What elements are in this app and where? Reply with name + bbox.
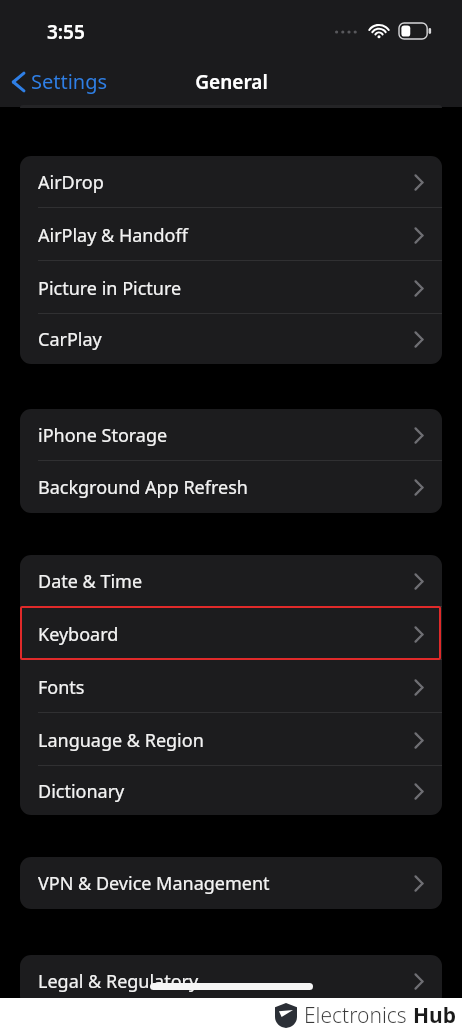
button[interactable]: Background App Refresh [20, 462, 442, 513]
button[interactable]: CarPlay [20, 315, 442, 364]
button[interactable]: Language & Region [20, 714, 442, 766]
staticText: Electronics [304, 1001, 407, 1030]
staticText: Background App Refresh [38, 475, 248, 500]
button[interactable]: iPhone Storage [20, 409, 442, 461]
staticText: Picture in Picture [38, 276, 182, 301]
button[interactable]: Dictionary [20, 767, 442, 815]
staticText: Fonts [38, 675, 85, 700]
button[interactable]: AirPlay & Handoff [20, 209, 442, 261]
staticText: General [195, 69, 268, 95]
button[interactable]: Picture in Picture [20, 262, 442, 314]
staticText: Hub [413, 1001, 456, 1030]
button[interactable]: AirDrop [20, 156, 442, 208]
staticText: CarPlay [38, 327, 102, 352]
staticText: Keyboard [38, 622, 119, 647]
button[interactable]: Fonts [20, 661, 442, 713]
staticText: Date & Time [38, 569, 143, 594]
staticText: AirDrop [38, 170, 104, 195]
button[interactable]: Legal & Regulatory [20, 955, 442, 1007]
staticText: 3:55 [47, 19, 85, 45]
staticText: VPN & Device Management [38, 871, 270, 896]
button[interactable]: Settings [6, 56, 118, 107]
staticText: iPhone Storage [38, 423, 168, 448]
staticText: Legal & Regulatory [38, 969, 199, 994]
button[interactable]: Date & Time [20, 555, 442, 607]
staticText: Settings [31, 68, 108, 95]
staticText: Language & Region [38, 728, 204, 753]
staticText: Dictionary [38, 779, 125, 804]
button[interactable]: Keyboard [20, 608, 442, 660]
button[interactable]: VPN & Device Management [20, 857, 442, 909]
staticText: AirPlay & Handoff [38, 223, 188, 248]
